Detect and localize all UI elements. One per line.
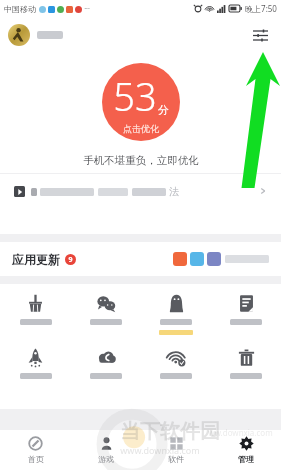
button[interactable]: 软件 bbox=[141, 430, 211, 470]
staticText: 当下软件园 bbox=[120, 419, 220, 444]
other: 更多 bbox=[259, 187, 267, 195]
button[interactable]: 53 bbox=[102, 63, 180, 141]
staticText: ww.downxia.com bbox=[208, 427, 273, 438]
staticText: 软件 bbox=[168, 454, 184, 464]
button[interactable] bbox=[211, 292, 281, 327]
staticText: 法 bbox=[169, 185, 179, 198]
staticText: 53 bbox=[113, 70, 157, 122]
button[interactable] bbox=[211, 346, 281, 381]
staticText: 点击优化 bbox=[123, 123, 159, 134]
staticText: 9 bbox=[68, 255, 73, 265]
staticText: 管理 bbox=[238, 454, 254, 464]
staticText: 晚上7:50 bbox=[245, 3, 277, 14]
button[interactable]: 首页 bbox=[0, 430, 71, 470]
button[interactable]: 应用更新 bbox=[0, 242, 281, 276]
staticText: 分 bbox=[158, 103, 169, 117]
staticText: 中国移动 bbox=[4, 4, 36, 14]
staticText: 应用更新 bbox=[12, 252, 60, 267]
button[interactable]: 管理 bbox=[211, 430, 281, 470]
button[interactable]: 用户头像 bbox=[8, 24, 30, 46]
button[interactable] bbox=[141, 292, 211, 337]
button[interactable] bbox=[0, 346, 71, 381]
button[interactable] bbox=[141, 346, 211, 381]
button[interactable]: 设置 bbox=[247, 22, 273, 48]
button[interactable] bbox=[71, 292, 141, 327]
staticText: 手机不堪重负，立即优化 bbox=[83, 154, 199, 167]
button[interactable]: 游戏 bbox=[71, 430, 141, 470]
staticText: 游戏 bbox=[98, 454, 114, 464]
staticText: 首页 bbox=[28, 454, 44, 464]
staticText: ··· bbox=[84, 4, 90, 14]
button[interactable]: 法 bbox=[0, 174, 281, 208]
staticText: www.downxia.com bbox=[120, 444, 200, 456]
button[interactable] bbox=[0, 292, 71, 327]
button[interactable] bbox=[71, 346, 141, 381]
